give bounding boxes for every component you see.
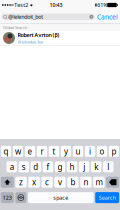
staticText: 123 — [3, 194, 12, 201]
staticText: b — [70, 177, 75, 187]
staticText: a — [10, 161, 14, 172]
button[interactable]: s — [19, 161, 29, 172]
button[interactable]: x — [28, 177, 40, 188]
staticText: c — [45, 177, 49, 187]
staticText: e — [27, 146, 32, 157]
staticText: v — [58, 177, 62, 187]
button[interactable]: space — [28, 192, 94, 203]
button[interactable]: Next keyboard — [15, 192, 26, 203]
staticText: ✕ — [90, 15, 92, 18]
staticText: @lelendoit_bot — [17, 39, 42, 44]
staticText: z — [19, 177, 23, 187]
staticText: f — [46, 161, 49, 172]
button[interactable]: w — [13, 146, 23, 157]
button[interactable]: h — [67, 161, 77, 172]
staticText: u — [75, 146, 80, 157]
staticText: s — [22, 161, 26, 172]
button[interactable]: y — [61, 146, 71, 157]
staticText: h — [70, 161, 75, 172]
button[interactable]: k — [91, 161, 101, 172]
staticText: Robert Avrton (β) — [17, 31, 59, 39]
staticText: i — [89, 146, 91, 157]
staticText: p — [111, 146, 116, 157]
button[interactable]: v — [54, 177, 66, 188]
staticText: d — [33, 161, 38, 172]
button[interactable]: o — [97, 146, 107, 157]
button[interactable]: Cancel — [97, 13, 118, 21]
staticText: 61% — [97, 1, 107, 9]
button[interactable]: Shift — [1, 177, 14, 188]
button[interactable]: m — [93, 177, 105, 188]
staticText: Global Search — [3, 25, 27, 30]
staticText: Test2 — [13, 1, 29, 9]
staticText: m — [95, 177, 102, 187]
button[interactable]: c — [41, 177, 53, 188]
staticText: l — [107, 161, 109, 172]
button[interactable]: e — [25, 146, 35, 157]
button[interactable]: z — [15, 177, 27, 188]
button[interactable]: f — [43, 161, 53, 172]
button[interactable]: Robert Avrton (β) — [0, 31, 120, 45]
staticText: t — [52, 146, 55, 157]
button[interactable]: r — [37, 146, 47, 157]
button[interactable]: b — [67, 177, 79, 188]
button[interactable]: a — [6, 161, 17, 172]
button[interactable]: j — [79, 161, 89, 172]
button[interactable]: l — [103, 161, 113, 172]
button[interactable]: Numbers — [1, 192, 14, 203]
staticText: r — [40, 146, 43, 157]
button[interactable]: Delete — [106, 177, 119, 188]
button[interactable]: u — [73, 146, 83, 157]
button[interactable]: i — [85, 146, 95, 157]
staticText: g — [57, 161, 62, 172]
button[interactable]: g — [55, 161, 65, 172]
staticText: Search — [99, 194, 116, 201]
staticText: x — [32, 177, 36, 187]
staticText: 10:43 — [49, 1, 62, 9]
staticText: o — [99, 146, 104, 157]
button[interactable]: t — [49, 146, 59, 157]
staticText: y — [64, 146, 68, 157]
staticText: q — [3, 146, 8, 157]
staticText: n — [83, 177, 88, 187]
button[interactable]: n — [80, 177, 92, 188]
button[interactable]: Search — [95, 192, 119, 203]
staticText: space — [53, 194, 68, 201]
staticText: j — [83, 161, 85, 172]
staticText: @lelendoit_bot — [8, 13, 43, 20]
button[interactable]: q — [1, 146, 11, 157]
staticText: k — [94, 161, 98, 172]
staticText: w — [15, 146, 21, 157]
button[interactable]: d — [31, 161, 41, 172]
staticText: Cancel — [97, 12, 118, 21]
button[interactable]: p — [109, 146, 119, 157]
